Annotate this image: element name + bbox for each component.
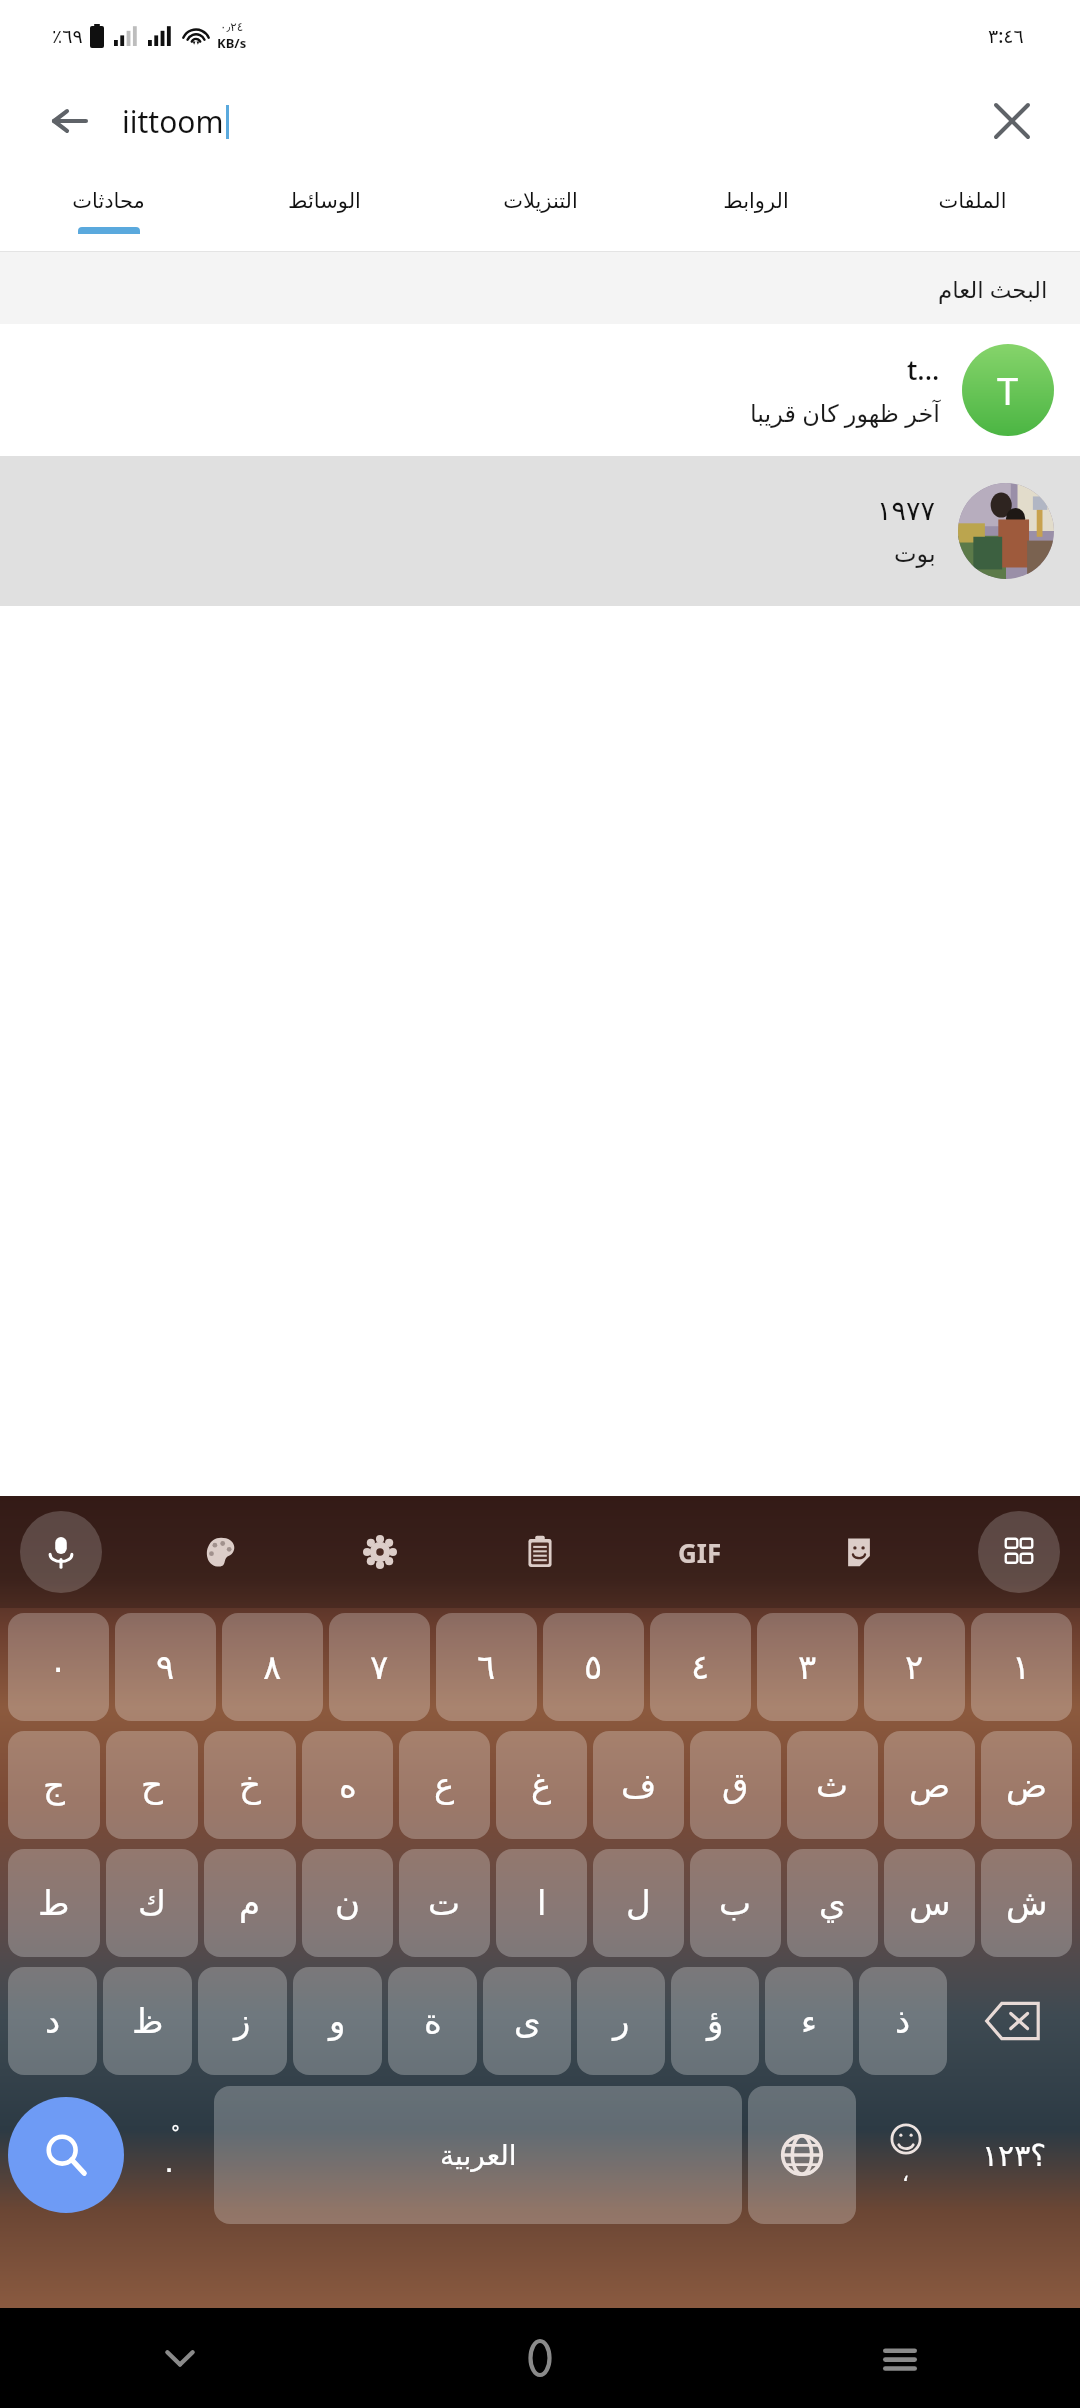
button[interactable]: Emoji: [862, 2086, 950, 2224]
button[interactable]: Change language: [748, 2086, 856, 2224]
button[interactable]: ض: [981, 1731, 1072, 1839]
staticText: ٠: [49, 1647, 68, 1687]
button[interactable]: ا: [496, 1849, 587, 1957]
button[interactable]: Back: [0, 72, 1080, 170]
button[interactable]: ٩: [115, 1613, 216, 1721]
staticText: ه: [339, 1765, 357, 1805]
button[interactable]: ١: [971, 1613, 1072, 1721]
button[interactable]: ت: [399, 1849, 490, 1957]
button[interactable]: ؤ: [671, 1967, 759, 2075]
staticText: ظ: [132, 2001, 164, 2041]
button[interactable]: ص: [884, 1731, 975, 1839]
staticText: ت: [428, 1883, 461, 1923]
staticText: خ: [239, 1765, 261, 1805]
staticText: ء: [801, 2001, 817, 2041]
staticText: ٠٫٢٤: [220, 20, 244, 34]
staticText: ٪٦٩: [52, 25, 83, 47]
button[interactable]: س: [884, 1849, 975, 1957]
staticText: ي: [819, 1883, 846, 1923]
button[interactable]: خ: [204, 1731, 296, 1839]
button[interactable]: و: [293, 1967, 382, 2075]
button[interactable]: ي: [787, 1849, 878, 1957]
button[interactable]: ه: [302, 1731, 393, 1839]
staticText: بوت: [894, 540, 936, 568]
staticText: ح: [141, 1765, 163, 1805]
button[interactable]: غ: [496, 1731, 587, 1839]
staticText: ؤ: [707, 2001, 724, 2041]
button[interactable]: ذ: [859, 1967, 947, 2075]
button[interactable]: ع: [399, 1731, 490, 1839]
staticText: ج: [43, 1765, 65, 1805]
button[interactable]: Search: [8, 2097, 124, 2213]
button[interactable]: ظ: [103, 1967, 192, 2075]
button[interactable]: ح: [106, 1731, 198, 1839]
staticText: ٩: [156, 1647, 175, 1687]
staticText: آخر ظهور كان قريبا: [750, 396, 940, 429]
button[interactable]: ء: [765, 1967, 853, 2075]
staticText: س: [909, 1883, 951, 1923]
button[interactable]: Home: [360, 2308, 720, 2408]
button[interactable]: ل: [593, 1849, 684, 1957]
staticText: ٦: [477, 1647, 496, 1687]
button[interactable]: Clear: [982, 91, 1042, 151]
button[interactable]: Back: [38, 89, 102, 153]
button[interactable]: ر: [577, 1967, 665, 2075]
button[interactable]: ز: [198, 1967, 287, 2075]
button[interactable]: ى: [483, 1967, 571, 2075]
button[interactable]: ج: [8, 1731, 100, 1839]
button[interactable]: Clipboard: [499, 1511, 581, 1593]
button[interactable]: ن: [302, 1849, 393, 1957]
button[interactable]: ف: [593, 1731, 684, 1839]
button[interactable]: ٦: [436, 1613, 537, 1721]
button[interactable]: ٥: [543, 1613, 644, 1721]
button[interactable]: الوسائط: [216, 170, 432, 252]
button[interactable]: Hide keyboard: [0, 2308, 360, 2408]
button[interactable]: محادثات: [0, 170, 216, 252]
button[interactable]: ٠: [8, 1613, 109, 1721]
button[interactable]: ٢: [864, 1613, 965, 1721]
button[interactable]: ٣: [757, 1613, 858, 1721]
button[interactable]: GIF: [659, 1511, 741, 1593]
button[interactable]: Voice input: [20, 1511, 102, 1593]
button[interactable]: More: [978, 1511, 1060, 1593]
staticText: ٤: [691, 1647, 710, 1687]
staticText: ك: [138, 1883, 167, 1923]
staticText: ؟١٢٣: [982, 2138, 1047, 2173]
button[interactable]: م: [204, 1849, 296, 1957]
button[interactable]: ق: [690, 1731, 781, 1839]
button[interactable]: ؟١٢٣: [956, 2086, 1072, 2224]
button[interactable]: ١٩٧٧: [0, 456, 1080, 606]
button[interactable]: الملفات: [864, 170, 1080, 252]
button[interactable]: Stickers: [818, 1511, 900, 1593]
staticText: البحث العام: [938, 273, 1048, 304]
button[interactable]: ٨: [222, 1613, 323, 1721]
staticText: ٣: [798, 1647, 817, 1687]
button[interactable]: ٤: [650, 1613, 751, 1721]
button[interactable]: Backspace: [953, 1967, 1072, 2075]
button[interactable]: t...: [0, 324, 1080, 456]
button[interactable]: ة: [388, 1967, 477, 2075]
button[interactable]: ط: [8, 1849, 100, 1957]
button[interactable]: Settings: [339, 1511, 421, 1593]
staticText: ذ: [895, 2001, 911, 2041]
button[interactable]: ب: [690, 1849, 781, 1957]
button[interactable]: العربية: [214, 2086, 742, 2224]
button[interactable]: ث: [787, 1731, 878, 1839]
staticText: ر: [613, 2001, 630, 2041]
button[interactable]: ٧: [329, 1613, 430, 1721]
staticText: غ: [531, 1765, 552, 1805]
button[interactable]: Theme: [180, 1511, 262, 1593]
button[interactable]: ك: [106, 1849, 198, 1957]
staticText: ن: [335, 1883, 360, 1923]
button[interactable]: د: [8, 1967, 97, 2075]
button[interactable]: الروابط: [648, 170, 864, 252]
button[interactable]: ْ: [130, 2086, 208, 2224]
staticText: ش: [1006, 1883, 1048, 1923]
button[interactable]: ش: [981, 1849, 1072, 1957]
staticText: T: [997, 364, 1019, 416]
staticText: ز: [234, 2001, 251, 2041]
staticText: ٣:٤٦: [988, 23, 1024, 49]
button[interactable]: التنزيلات: [432, 170, 648, 252]
staticText: ٠: [161, 2151, 178, 2186]
button[interactable]: Recents: [720, 2308, 1080, 2408]
